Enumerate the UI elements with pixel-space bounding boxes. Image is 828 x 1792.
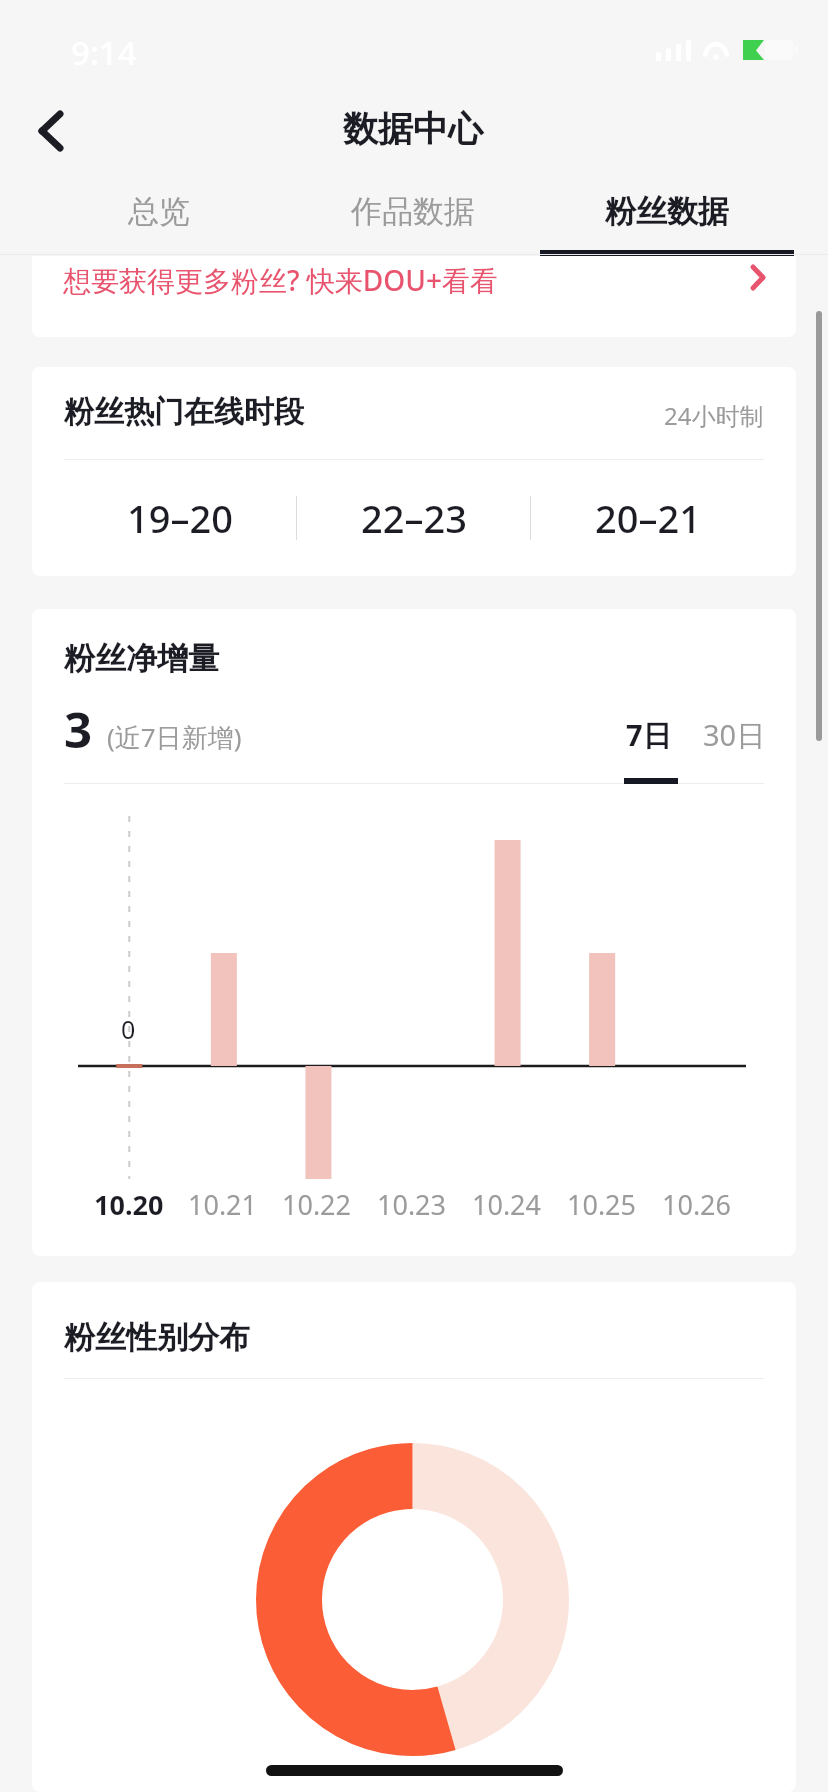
staticText: 粉丝热门在线时段 bbox=[64, 393, 304, 431]
button[interactable]: 总览 bbox=[32, 180, 286, 256]
button[interactable]: 想要获得更多粉丝? 快来DOU+看看 bbox=[32, 256, 796, 337]
staticText: 粉丝数据 bbox=[605, 192, 729, 231]
staticText: 粉丝净增量 bbox=[64, 639, 219, 678]
staticText: 24小时制 bbox=[664, 399, 764, 432]
staticText: 作品数据 bbox=[351, 192, 475, 231]
button[interactable]: 粉丝数据 bbox=[540, 180, 794, 256]
staticText: 19–20 bbox=[127, 492, 233, 544]
staticText: 10.25 bbox=[567, 1186, 637, 1223]
staticText: 3 bbox=[64, 696, 93, 758]
staticText: 22–23 bbox=[361, 492, 467, 544]
staticText: 10.23 bbox=[377, 1186, 447, 1223]
staticText: 0 bbox=[121, 1012, 136, 1046]
staticText: 数据中心 bbox=[343, 107, 483, 151]
staticText: 20–21 bbox=[595, 492, 701, 544]
staticText: 10.21 bbox=[188, 1186, 258, 1223]
button[interactable]: 30日 bbox=[703, 715, 766, 755]
staticText: 总览 bbox=[128, 192, 190, 231]
staticText: 粉丝性别分布 bbox=[64, 1318, 250, 1357]
staticText: 10.22 bbox=[282, 1186, 352, 1223]
staticText: 9:14 bbox=[71, 30, 137, 75]
button[interactable]: Back bbox=[20, 100, 82, 162]
staticText: 10.20 bbox=[94, 1186, 164, 1223]
staticText: 10.26 bbox=[662, 1186, 732, 1223]
button[interactable]: 7日 bbox=[626, 715, 672, 755]
staticText: (近7日新增) bbox=[107, 719, 242, 755]
button[interactable]: 作品数据 bbox=[286, 180, 540, 256]
staticText: 10.24 bbox=[472, 1186, 542, 1223]
staticText: 想要获得更多粉丝? 快来DOU+看看 bbox=[63, 261, 498, 299]
